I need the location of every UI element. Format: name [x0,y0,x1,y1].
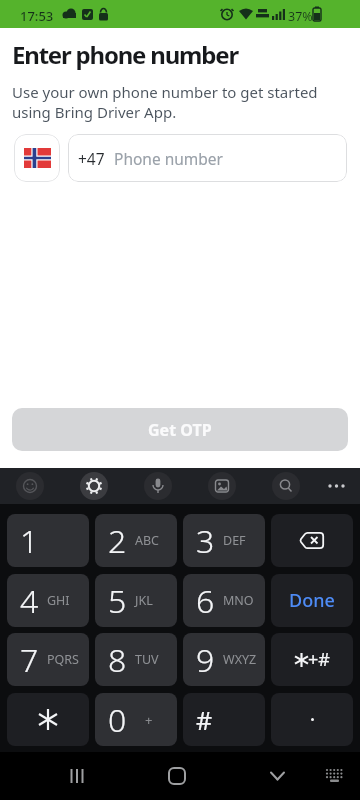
button[interactable] [90,752,180,800]
button[interactable] [60,468,120,504]
button[interactable] [271,514,353,567]
staticText: 5 [108,579,127,623]
staticText: 3 [196,519,215,563]
staticText: 9 [196,638,215,682]
staticText: # [196,703,213,737]
staticText: 1 [20,519,39,563]
staticText: 0 [108,698,127,742]
staticText: +47 [78,148,105,169]
button[interactable]: 4 [7,574,89,627]
staticText: TUV [135,651,159,668]
staticText: 8 [108,638,127,682]
staticText: GHI [47,592,70,609]
button[interactable] [14,134,60,182]
button[interactable]: 7 [7,633,89,686]
button[interactable] [0,752,90,800]
button[interactable]: 2 [95,514,177,567]
staticText: 37% [288,8,313,25]
button[interactable]: 5 [95,574,177,627]
button[interactable]: # [183,693,265,746]
staticText: 6 [196,579,215,623]
button[interactable] [0,468,60,504]
button[interactable]: Get OTP [12,408,348,451]
button[interactable] [180,752,270,800]
staticText: 4 [20,579,39,623]
button[interactable]: 9 [183,633,265,686]
button[interactable] [270,752,360,800]
button[interactable] [180,468,240,504]
button[interactable] [300,468,360,504]
staticText: 2 [108,519,127,563]
staticText: JKL [135,592,153,609]
staticText: DEF [223,532,246,549]
staticText: + [145,711,153,729]
button[interactable]: 0 [95,693,177,746]
staticText: Enter phone number [12,38,238,71]
staticText: PQRS [47,651,79,668]
button[interactable] [7,693,89,746]
button[interactable]: Done [271,574,353,627]
button[interactable] [120,468,180,504]
staticText: Get OTP [148,419,212,441]
button[interactable]: +# [271,633,353,686]
button[interactable]: 1 [7,514,89,567]
staticText: ABC [135,532,160,549]
staticText: +# [308,647,330,672]
staticText: MNO [223,592,254,609]
button[interactable]: 6 [183,574,265,627]
staticText: Done [289,588,335,613]
button[interactable]: +47 [68,134,347,182]
staticText: 17:53 [20,7,54,25]
staticText: Phone number [114,148,224,169]
button[interactable]: 3 [183,514,265,567]
staticText: 7 [20,638,39,682]
button[interactable] [271,693,353,746]
button[interactable] [240,468,300,504]
button[interactable]: 8 [95,633,177,686]
staticText: Use your own phone number to get started… [12,82,318,122]
staticText: WXYZ [223,651,257,668]
